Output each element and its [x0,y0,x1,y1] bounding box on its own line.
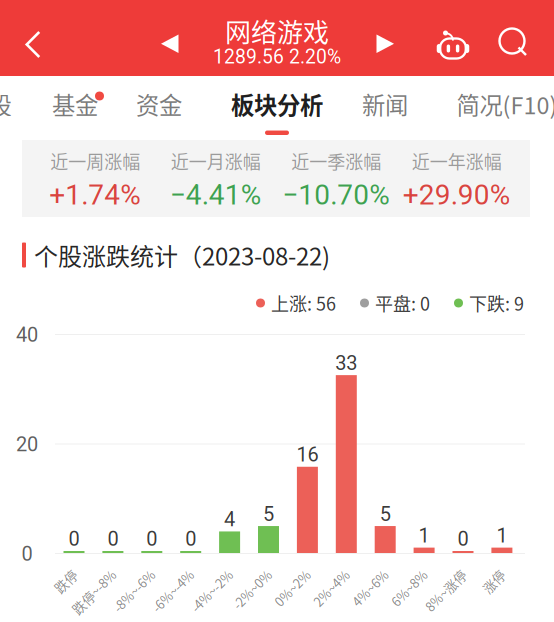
staticText: 简况(F10) [456,87,554,121]
staticText: 33 [335,351,357,375]
staticText: 0 [457,527,468,551]
button[interactable]: AI assistant [430,3,476,79]
staticText: 新闻 [362,87,408,121]
staticText: 板块分析 [231,87,323,121]
staticText: 下跌: 9 [469,290,524,316]
staticText: 资金 [136,87,182,121]
staticText: 8%~涨停 [424,591,476,609]
button[interactable]: 板块分析 [221,76,333,138]
staticText: 0 [21,542,32,566]
staticText: -6%~-4% [150,591,203,609]
staticText: 近一月涨幅 [171,148,261,174]
button[interactable]: 简况(F10) [452,76,554,132]
staticText: -8%~-6% [111,591,164,609]
staticText: 40 [16,323,38,347]
staticText: −10.70% [282,179,390,211]
staticText: 0%~2% [275,591,320,609]
button[interactable]: Next sector [362,0,408,76]
staticText: 1 [496,524,507,547]
staticText: 5 [263,502,274,526]
staticText: 4%~6% [353,591,398,609]
staticText: -2%~0% [232,591,281,609]
staticText: 跌停 [61,591,87,609]
staticText: 20 [16,433,38,456]
button[interactable]: 新闻 [352,76,418,132]
staticText: 6%~8% [392,591,437,609]
staticText: 0 [68,527,79,551]
button[interactable]: 资金 [126,76,192,132]
button[interactable]: Search [491,0,537,76]
staticText: 平盘: 0 [375,290,430,316]
staticText: 16 [296,443,318,466]
staticText: +1.74% [49,179,141,211]
staticText: 2%~4% [314,591,359,609]
staticText: 1 [419,524,430,547]
staticText: 4 [224,508,235,531]
staticText: 近一周涨幅 [50,148,140,174]
staticText: +29.90% [403,179,511,211]
staticText: 近一季涨幅 [291,148,381,174]
staticText: 基金 [52,87,98,121]
staticText: 0 [185,527,196,551]
button[interactable]: Previous sector [147,0,193,76]
button[interactable]: Back [7,0,59,76]
staticText: 股 [0,87,11,121]
staticText: 0 [107,527,118,551]
staticText: −4.41% [170,179,262,211]
staticText: 涨停 [489,591,515,609]
staticText: 个股涨跌统计（2023-08-22) [34,238,330,272]
staticText: 跌停~-8% [70,591,126,609]
staticText: -4%~-2% [189,591,242,609]
staticText: 近一年涨幅 [412,148,502,174]
staticText: 上涨: 56 [271,290,336,316]
staticText: 5 [380,502,391,526]
staticText: 0 [146,527,157,551]
staticText: 1289.56 2.20% [213,46,341,68]
button[interactable]: 基金 [46,76,118,132]
staticText: 网络游戏 [225,12,329,50]
